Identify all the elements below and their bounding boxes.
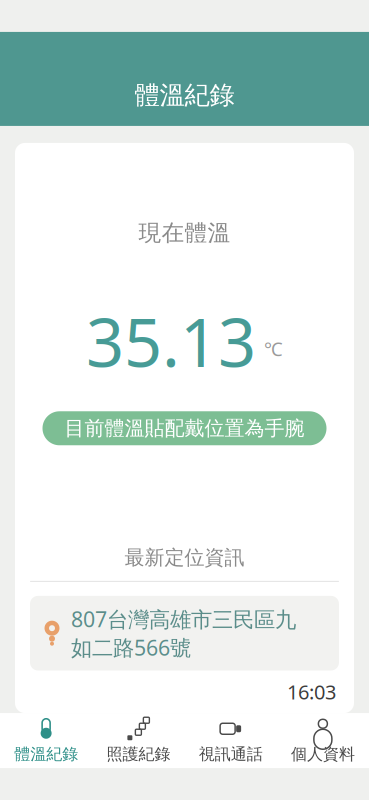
button[interactable]: 個人資料	[277, 710, 369, 771]
staticText: 35.13	[86, 297, 256, 385]
staticText: 體溫紀錄	[14, 744, 78, 764]
staticText: 807台灣高雄市三民區九如二路566號	[71, 605, 296, 662]
button[interactable]: 目前體溫貼配戴位置為手腕	[42, 411, 326, 445]
staticText: ℃	[264, 336, 283, 361]
staticText: 個人資料	[291, 744, 355, 764]
staticText: 體溫紀錄	[134, 80, 234, 111]
staticText: 16:03	[287, 678, 336, 705]
staticText: 最新定位資訊	[124, 545, 244, 570]
staticText: 現在體溫	[138, 219, 230, 247]
button[interactable]: 照護紀錄	[92, 710, 184, 771]
button[interactable]: 視訊通話	[184, 710, 277, 771]
staticText: 目前體溫貼配戴位置為手腕	[64, 416, 304, 441]
staticText: 照護紀錄	[106, 744, 170, 764]
staticText: 視訊通話	[199, 744, 263, 764]
button[interactable]: 807台灣高雄市三民區九如二路566號	[30, 596, 339, 671]
button[interactable]: 體溫紀錄	[0, 710, 92, 771]
